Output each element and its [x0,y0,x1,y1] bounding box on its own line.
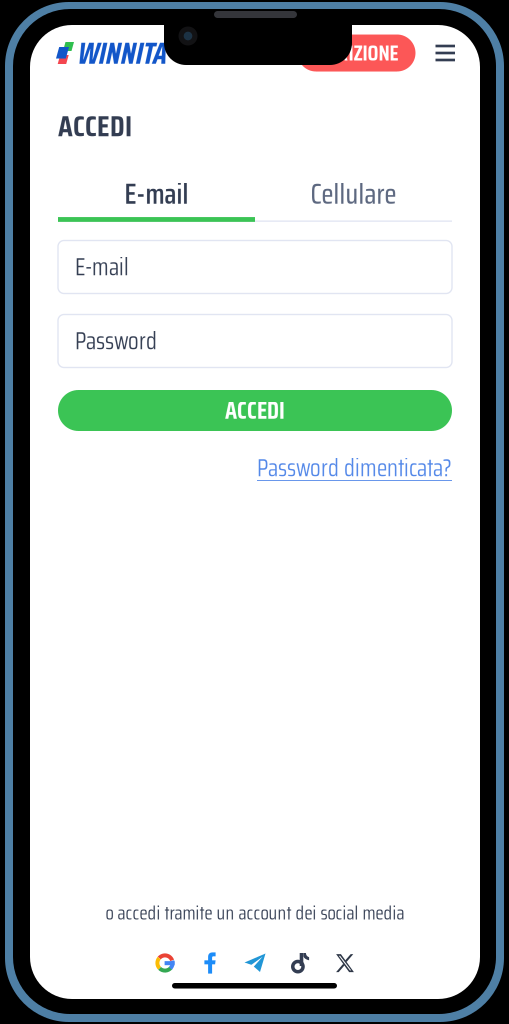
staticText: ACCEDI [225,392,285,429]
staticText: ISCRIZIONE [314,36,398,70]
staticText: Password dimenticata? [257,449,452,487]
staticText: o accedi tramite un account dei social m… [105,898,404,928]
button[interactable]: Cellulare [255,172,452,216]
staticText: Password [75,322,157,360]
button[interactable]: Google [142,951,187,975]
button[interactable]: ACCEDI [30,390,480,431]
button[interactable]: Telegram [232,951,277,975]
button[interactable]: Facebook [187,951,232,975]
button[interactable]: TikTok [277,951,322,975]
button[interactable]: ISCRIZIONE [297,34,415,71]
staticText: WINNITA [78,29,167,77]
button[interactable]: Menu [421,35,469,71]
button[interactable]: X [322,951,367,975]
staticText: ACCEDI [58,103,132,149]
button[interactable]: Password dimenticata? [247,443,480,493]
staticText: E-mail [124,172,188,216]
button[interactable]: E-mail [58,172,255,216]
staticText: Cellulare [310,172,396,216]
staticText: E-mail [75,248,129,286]
